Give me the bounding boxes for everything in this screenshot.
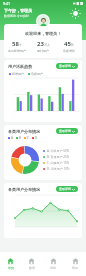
staticText: 9:41	[3, 1, 10, 6]
staticText: 查看详情	[59, 187, 71, 191]
staticText: 数据	[29, 266, 35, 270]
button[interactable]: D: 流失用户 10%	[43, 167, 70, 171]
staticText: 各类用户分布情况	[8, 129, 40, 134]
staticText: 个	[19, 43, 22, 47]
button[interactable]: 23	[30, 40, 56, 53]
button[interactable]: 消息	[42, 252, 64, 276]
staticText: 首页	[8, 266, 14, 270]
staticText: 数据概览 今日实时	[4, 14, 29, 18]
button[interactable]: 45	[56, 40, 82, 53]
staticText: 23	[37, 40, 44, 48]
button[interactable]: 查看详情	[56, 186, 78, 192]
staticText: A: 活跃用户 50%	[47, 149, 70, 153]
staticText: 活跃增长	[63, 49, 75, 53]
staticText: D: 流失用户 10%	[47, 167, 70, 171]
staticText: %	[71, 43, 74, 47]
staticText: 欢迎回来，管理员！	[25, 31, 61, 36]
staticText: 活跃用户	[31, 72, 43, 76]
staticText: 查看详情	[59, 64, 71, 68]
button[interactable]: 数据	[21, 252, 42, 276]
staticText: 新增用户	[12, 72, 24, 76]
staticText: C	[27, 136, 29, 140]
button[interactable]: 查看详情	[56, 128, 78, 134]
staticText: 我的	[72, 266, 78, 270]
button[interactable]: B: 普通用户 25%	[43, 155, 70, 159]
staticText: 用户活跃趋势	[8, 64, 32, 69]
staticText: A	[11, 136, 13, 140]
staticText: C: 沉睡用户 15%	[47, 161, 70, 165]
button[interactable]: Weather	[70, 8, 81, 19]
button[interactable]: 我的	[64, 252, 86, 276]
button[interactable]: A: 活跃用户 50%	[43, 149, 70, 153]
staticText: 累计用户	[37, 49, 49, 53]
staticText: D	[35, 136, 38, 140]
staticText: 查看详情	[59, 129, 71, 133]
staticText: 万人	[44, 43, 50, 47]
staticText: 45	[64, 40, 71, 48]
staticText: 本月新增用户	[8, 49, 26, 53]
button[interactable]: 首页	[0, 252, 21, 276]
staticText: 下午好，管理员	[4, 8, 32, 13]
staticText: 58	[12, 40, 19, 48]
staticText: B: 普通用户 25%	[47, 155, 70, 159]
staticText: 各类用户分布情况	[8, 187, 40, 192]
button[interactable]: 58	[4, 40, 30, 53]
button[interactable]: 查看详情	[56, 63, 78, 69]
button[interactable]: C: 沉睡用户 15%	[43, 161, 70, 165]
staticText: 消息	[50, 266, 56, 270]
staticText: B	[19, 136, 21, 140]
